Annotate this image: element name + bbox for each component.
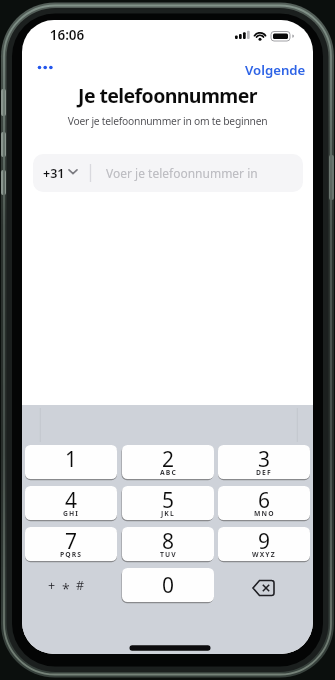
staticText: +: [48, 577, 56, 594]
staticText: 16:06: [42, 26, 92, 44]
staticText: 4: [65, 486, 78, 509]
staticText: JKL: [161, 509, 175, 518]
button[interactable]: 3: [218, 445, 310, 479]
button[interactable]: 0: [122, 568, 214, 602]
staticText: TUV: [160, 550, 177, 559]
button[interactable]: 9: [218, 527, 310, 561]
button[interactable]: 7: [25, 527, 117, 561]
staticText: 7: [65, 527, 78, 550]
button[interactable]: 5: [122, 486, 214, 520]
button[interactable]: Volgende: [244, 58, 306, 82]
staticText: 5: [162, 486, 175, 509]
staticText: 3: [258, 445, 271, 468]
staticText: ABC: [160, 468, 177, 477]
staticText: *: [62, 579, 70, 598]
staticText: WXYZ: [252, 550, 276, 559]
staticText: +31: [43, 165, 65, 182]
button[interactable]: 4: [25, 486, 117, 520]
button[interactable]: [32, 58, 60, 78]
button[interactable]: 2: [122, 445, 214, 479]
button[interactable]: 8: [122, 527, 214, 561]
staticText: Volgende: [245, 61, 306, 79]
staticText: 1: [65, 445, 78, 468]
staticText: 2: [162, 445, 175, 468]
staticText: PQRS: [60, 550, 83, 559]
button[interactable]: 1: [25, 445, 117, 479]
staticText: Voer je telefoonnummer in om te beginnen: [22, 114, 313, 128]
button[interactable]: 6: [218, 486, 310, 520]
staticText: 8: [162, 527, 175, 550]
button[interactable]: +: [25, 568, 107, 602]
staticText: DEF: [256, 468, 272, 477]
staticText: #: [76, 577, 85, 594]
button[interactable]: +31: [33, 154, 303, 192]
staticText: 6: [258, 486, 271, 509]
staticText: Voer je telefoonnummer in: [106, 165, 258, 181]
staticText: MNO: [254, 509, 275, 518]
button[interactable]: [218, 568, 310, 602]
staticText: 0: [162, 571, 175, 600]
staticText: GHI: [63, 509, 80, 518]
staticText: Je telefoonnummer: [22, 82, 313, 109]
staticText: 9: [258, 527, 271, 550]
